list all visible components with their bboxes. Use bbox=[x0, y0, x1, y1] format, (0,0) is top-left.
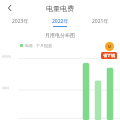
staticText: 2023年 bbox=[12, 18, 29, 25]
button[interactable]: 2021年 bbox=[80, 16, 120, 29]
staticText: 省了钱 bbox=[103, 53, 115, 58]
staticText: 电量电费 bbox=[46, 4, 74, 13]
button[interactable]: Forecast highlight bbox=[101, 42, 117, 59]
button[interactable]: Back bbox=[3, 1, 17, 15]
button[interactable]: 2023年 bbox=[0, 16, 40, 29]
button[interactable]: 2022年 bbox=[40, 16, 80, 29]
staticText: 2021年 bbox=[92, 18, 109, 25]
staticText: 电量 bbox=[25, 43, 33, 48]
staticText: 下月预测 bbox=[36, 43, 52, 48]
staticText: 2022年 bbox=[52, 18, 69, 25]
staticText: 月用电分布图 bbox=[45, 32, 75, 38]
